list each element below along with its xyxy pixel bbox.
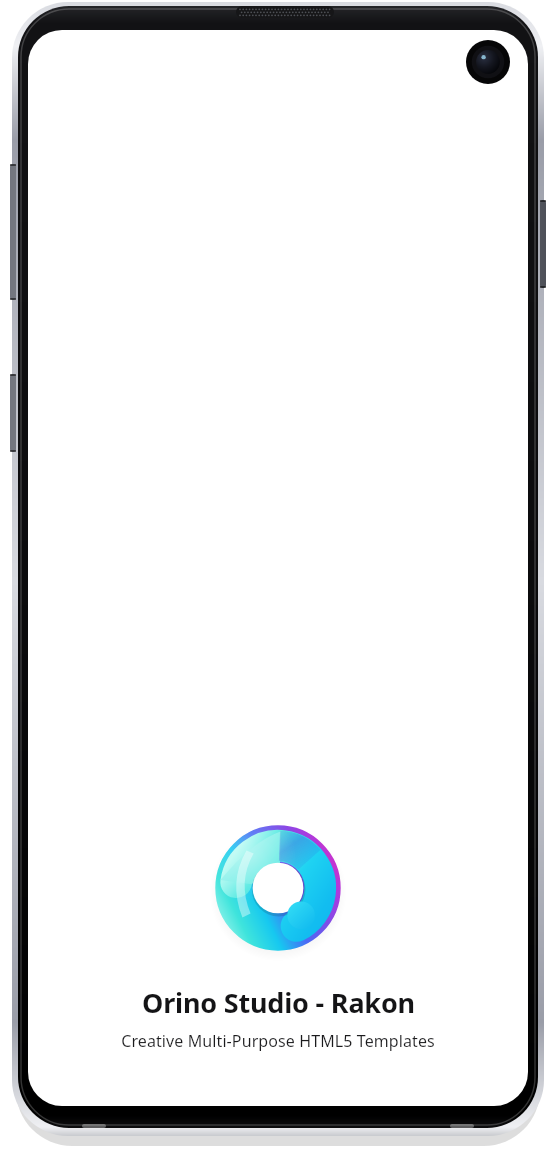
staticText: Creative Multi-Purpose HTML5 Templates bbox=[121, 1030, 435, 1052]
button[interactable]: Orino Studio logo bbox=[121, 822, 435, 1052]
other: Orino Studio logo bbox=[212, 822, 344, 954]
staticText: Orino Studio - Rakon bbox=[142, 984, 415, 1021]
